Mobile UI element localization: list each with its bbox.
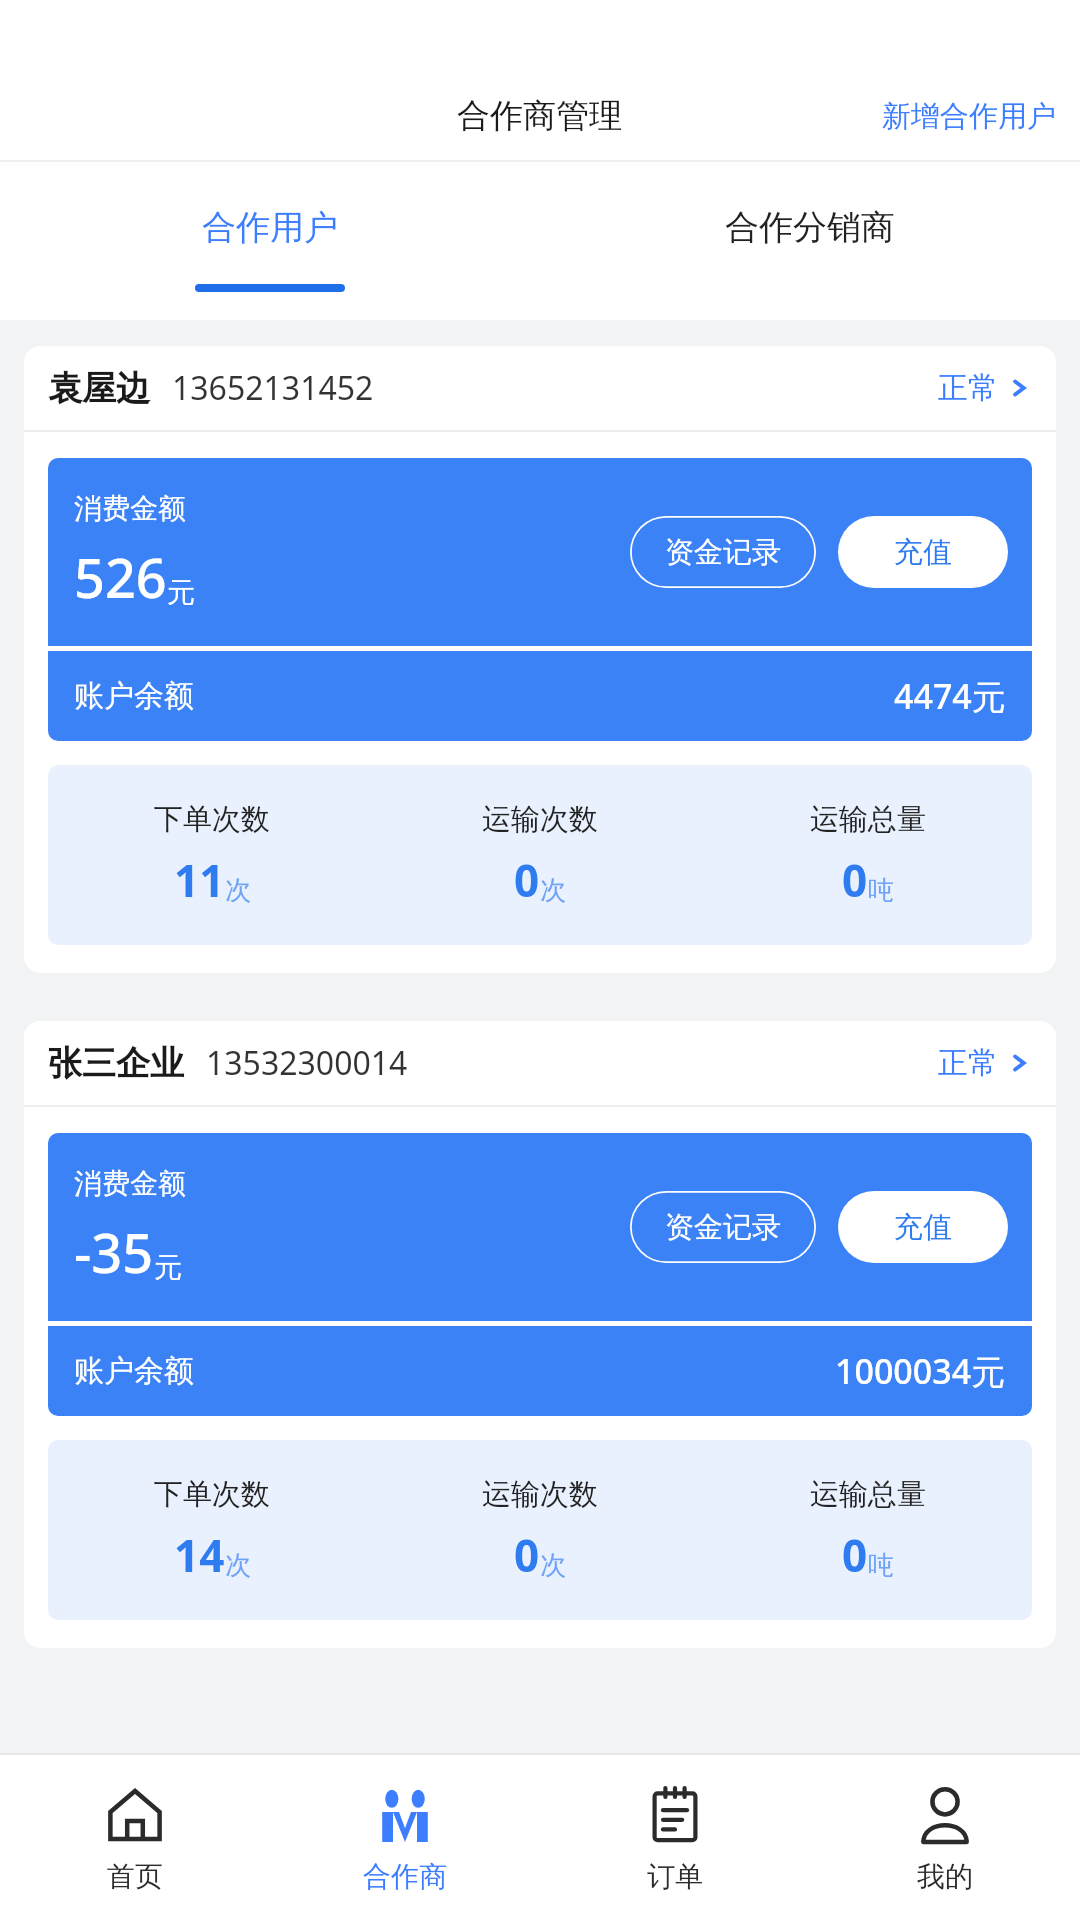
staticText: 吨: [868, 874, 894, 907]
staticText: 次: [540, 1549, 566, 1582]
staticText: 526: [74, 540, 167, 614]
staticText: 0: [842, 1525, 868, 1585]
staticText: 次: [225, 874, 251, 907]
staticText: 资金记录: [665, 534, 781, 571]
staticText: 0: [514, 850, 540, 910]
button[interactable]: 我的: [810, 1755, 1080, 1920]
staticText: 14: [174, 1525, 225, 1585]
staticText: 运输次数: [482, 801, 598, 838]
staticText: 首页: [107, 1859, 163, 1894]
staticText: 消费金额: [74, 491, 186, 526]
button[interactable]: 资金记录: [630, 1191, 816, 1263]
staticText: 消费金额: [74, 1166, 186, 1201]
staticText: 订单: [647, 1859, 703, 1894]
button[interactable]: 充值: [838, 1191, 1008, 1263]
staticText: 资金记录: [665, 1209, 781, 1246]
staticText: 运输次数: [482, 1476, 598, 1513]
staticText: -35: [74, 1215, 154, 1289]
staticText: 合作商: [363, 1859, 447, 1894]
staticText: 运输总量: [810, 801, 926, 838]
button[interactable]: 新增合作用户: [858, 86, 1080, 147]
staticText: 次: [225, 1549, 251, 1582]
button[interactable]: 订单: [540, 1755, 810, 1920]
staticText: 次: [540, 874, 566, 907]
button[interactable]: 袁屋边: [24, 346, 1056, 973]
button[interactable]: 首页: [0, 1755, 270, 1920]
button[interactable]: 合作商: [270, 1755, 540, 1920]
staticText: 新增合作用户: [882, 98, 1056, 135]
staticText: 元: [154, 1250, 182, 1285]
button[interactable]: 合作分销商: [540, 162, 1080, 320]
button[interactable]: 资金记录: [630, 516, 816, 588]
button[interactable]: 合作用户: [0, 162, 540, 320]
staticText: 正常: [938, 1044, 998, 1082]
staticText: 1000034元: [835, 1348, 1006, 1394]
staticText: 4474元: [894, 673, 1006, 719]
staticText: 袁屋边: [48, 367, 150, 410]
staticText: 运输总量: [810, 1476, 926, 1513]
staticText: 0: [514, 1525, 540, 1585]
staticText: 13532300014: [206, 1041, 408, 1085]
staticText: 张三企业: [48, 1042, 184, 1085]
staticText: 合作分销商: [725, 206, 895, 249]
staticText: 吨: [868, 1549, 894, 1582]
button[interactable]: 充值: [838, 516, 1008, 588]
staticText: 11: [174, 850, 225, 910]
staticText: 下单次数: [154, 1476, 270, 1513]
staticText: 账户余额: [74, 1352, 194, 1390]
staticText: 合作用户: [202, 206, 338, 249]
staticText: 13652131452: [172, 366, 374, 410]
button[interactable]: 张三企业: [24, 1021, 1056, 1648]
staticText: 合作商管理: [457, 95, 622, 137]
staticText: 账户余额: [74, 677, 194, 715]
staticText: 下单次数: [154, 801, 270, 838]
staticText: 元: [167, 575, 195, 610]
staticText: 充值: [894, 534, 952, 571]
staticText: 我的: [917, 1859, 973, 1894]
staticText: 0: [842, 850, 868, 910]
staticText: 正常: [938, 369, 998, 407]
staticText: 充值: [894, 1209, 952, 1246]
